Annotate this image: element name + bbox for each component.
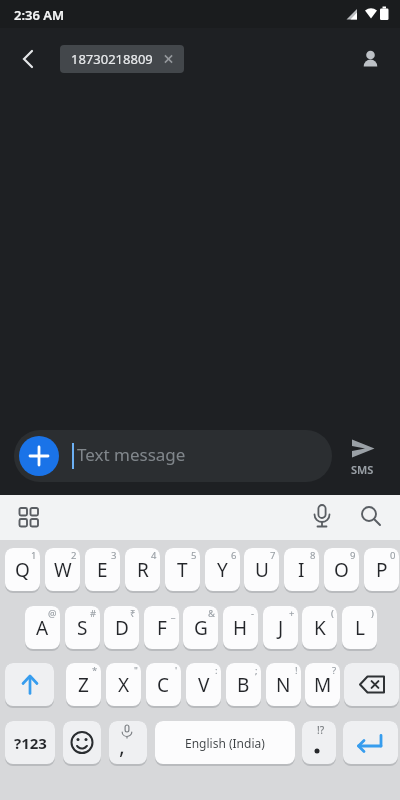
button[interactable]: English (India) bbox=[155, 721, 295, 766]
staticText: Text message bbox=[77, 443, 186, 466]
button[interactable]: B bbox=[226, 663, 261, 708]
button[interactable]: K bbox=[302, 606, 337, 651]
staticText: English (India) bbox=[185, 735, 265, 751]
button[interactable] bbox=[19, 436, 59, 476]
staticText: @ bbox=[48, 607, 57, 620]
button[interactable]: Z bbox=[66, 663, 101, 708]
staticText: ; bbox=[255, 664, 258, 677]
staticText: L bbox=[355, 615, 365, 641]
staticText: U bbox=[255, 557, 269, 583]
staticText: 4 bbox=[151, 549, 157, 562]
button[interactable]: , bbox=[109, 721, 147, 766]
button[interactable]: T bbox=[165, 548, 200, 593]
staticText: I bbox=[298, 557, 305, 583]
staticText: ( bbox=[331, 607, 334, 620]
button[interactable]: V bbox=[186, 663, 221, 708]
button[interactable]: !? bbox=[302, 721, 336, 766]
button[interactable]: N bbox=[266, 663, 301, 708]
button[interactable]: U bbox=[244, 548, 279, 593]
staticText: G bbox=[194, 615, 208, 641]
button[interactable]: P bbox=[364, 548, 399, 593]
button[interactable]: 18730218809 bbox=[60, 45, 184, 73]
button[interactable]: SMS bbox=[340, 428, 388, 484]
staticText: + bbox=[289, 607, 295, 620]
button[interactable] bbox=[354, 43, 388, 77]
staticText: _ bbox=[171, 607, 176, 620]
staticText: O bbox=[334, 557, 349, 583]
staticText: J bbox=[278, 615, 284, 641]
staticText: # bbox=[90, 607, 97, 620]
staticText: 18730218809 bbox=[71, 50, 153, 68]
button[interactable]: X bbox=[106, 663, 141, 708]
button[interactable] bbox=[10, 498, 48, 536]
staticText: 2 bbox=[71, 549, 77, 562]
button[interactable]: D bbox=[104, 606, 139, 651]
staticText: 2:36 AM bbox=[14, 6, 65, 24]
button[interactable]: M bbox=[305, 663, 340, 708]
button[interactable]: I bbox=[284, 548, 319, 593]
staticText: ' bbox=[175, 664, 178, 677]
staticText: F bbox=[157, 615, 167, 641]
button[interactable]: ?123 bbox=[5, 721, 55, 766]
staticText: ?123 bbox=[14, 733, 47, 753]
staticText: Q bbox=[15, 557, 30, 583]
staticText: N bbox=[276, 672, 291, 698]
button[interactable] bbox=[5, 663, 54, 708]
button[interactable]: H bbox=[223, 606, 258, 651]
staticText: - bbox=[251, 607, 255, 620]
button[interactable] bbox=[352, 498, 390, 536]
button[interactable]: A bbox=[25, 606, 60, 651]
button[interactable] bbox=[303, 498, 341, 536]
button[interactable]: E bbox=[85, 548, 120, 593]
staticText: Y bbox=[217, 557, 228, 583]
button[interactable]: J bbox=[263, 606, 298, 651]
staticText: M bbox=[314, 672, 332, 698]
staticText: 0 bbox=[390, 549, 396, 562]
button[interactable]: L bbox=[342, 606, 377, 651]
staticText: !? bbox=[317, 723, 325, 737]
button[interactable]: W bbox=[45, 548, 80, 593]
staticText: S bbox=[77, 615, 88, 641]
staticText: 7 bbox=[270, 549, 276, 562]
staticText: H bbox=[233, 615, 248, 641]
staticText: 8 bbox=[310, 549, 316, 562]
staticText: * bbox=[92, 664, 98, 677]
staticText: C bbox=[157, 672, 170, 698]
button[interactable] bbox=[343, 721, 398, 766]
staticText: : bbox=[215, 664, 218, 677]
staticText: & bbox=[208, 607, 215, 620]
button[interactable]: Text message bbox=[14, 430, 332, 482]
button[interactable]: Q bbox=[5, 548, 40, 593]
staticText: 6 bbox=[231, 549, 237, 562]
staticText: X bbox=[118, 672, 130, 698]
staticText: A bbox=[36, 615, 49, 641]
staticText: ₹ bbox=[130, 607, 136, 620]
button[interactable]: G bbox=[183, 606, 218, 651]
button[interactable]: S bbox=[65, 606, 100, 651]
button[interactable]: O bbox=[324, 548, 359, 593]
button[interactable]: R bbox=[125, 548, 160, 593]
staticText: D bbox=[115, 615, 129, 641]
button[interactable]: C bbox=[146, 663, 181, 708]
staticText: " bbox=[134, 664, 138, 677]
staticText: V bbox=[198, 672, 210, 698]
staticText: SMS bbox=[351, 462, 374, 477]
staticText: , bbox=[119, 730, 125, 760]
staticText: 9 bbox=[350, 549, 356, 562]
staticText: T bbox=[177, 557, 188, 583]
button[interactable]: Y bbox=[205, 548, 240, 593]
staticText: E bbox=[97, 557, 108, 583]
staticText: K bbox=[314, 615, 326, 641]
button[interactable] bbox=[344, 663, 399, 708]
staticText: R bbox=[137, 557, 149, 583]
staticText: W bbox=[54, 557, 72, 583]
staticText: 3 bbox=[111, 549, 117, 562]
button[interactable]: F bbox=[144, 606, 179, 651]
staticText: Z bbox=[78, 672, 89, 698]
button[interactable] bbox=[12, 43, 44, 75]
staticText: ) bbox=[371, 607, 374, 620]
staticText: B bbox=[237, 672, 250, 698]
button[interactable] bbox=[63, 721, 101, 766]
staticText: 5 bbox=[191, 549, 197, 562]
staticText: P bbox=[376, 557, 388, 583]
